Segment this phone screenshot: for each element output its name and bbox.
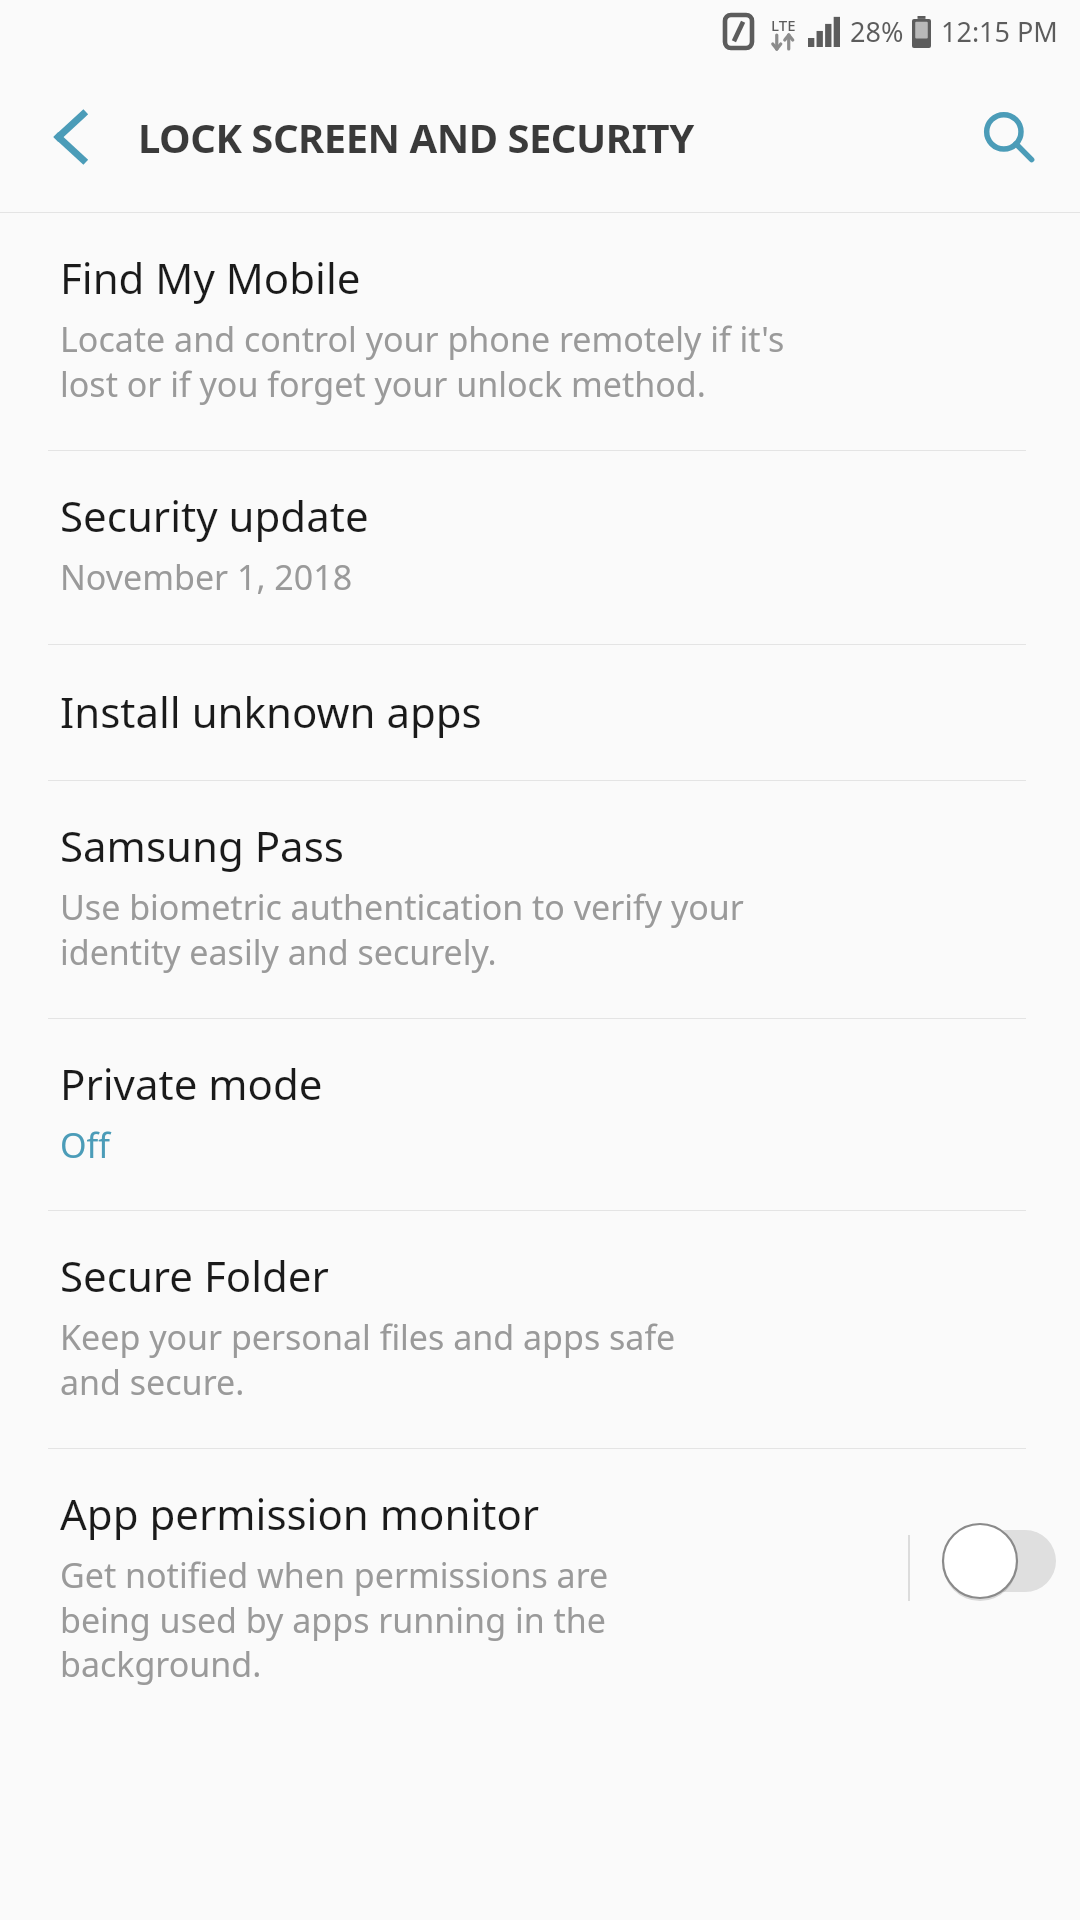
button[interactable]: App permission monitor toggle (940, 1521, 1056, 1601)
staticText: LTE (771, 15, 796, 35)
staticText: 12:15 PM (941, 13, 1058, 50)
button[interactable]: Find My Mobile (0, 213, 1080, 450)
button[interactable]: Private mode (0, 1019, 1080, 1210)
staticText: Use biometric authentication to verify y… (60, 884, 744, 974)
button[interactable]: Back (26, 91, 118, 183)
staticText: 28% (850, 13, 904, 50)
staticText: Secure Folder (60, 1247, 329, 1304)
button[interactable]: Search (960, 89, 1056, 185)
staticText: Find My Mobile (60, 249, 361, 306)
button[interactable]: Secure Folder (0, 1211, 1080, 1448)
button[interactable]: Samsung Pass (0, 781, 1080, 1018)
button[interactable]: Install unknown apps (0, 645, 1080, 780)
staticText: Samsung Pass (60, 817, 344, 874)
staticText: Private mode (60, 1055, 323, 1112)
staticText: Off (60, 1122, 110, 1168)
staticText: Security update (60, 487, 369, 544)
button[interactable]: Security update (0, 451, 1080, 644)
staticText: Install unknown apps (60, 683, 482, 740)
staticText: Keep your personal files and apps safe a… (60, 1314, 676, 1404)
staticText: Get notified when permissions are being … (60, 1552, 609, 1686)
button[interactable]: App permission monitor (0, 1449, 1080, 1686)
staticText: LOCK SCREEN AND SECURITY (138, 110, 694, 164)
staticText: November 1, 2018 (60, 554, 353, 600)
staticText: Locate and control your phone remotely i… (60, 316, 785, 406)
staticText: App permission monitor (60, 1485, 540, 1542)
